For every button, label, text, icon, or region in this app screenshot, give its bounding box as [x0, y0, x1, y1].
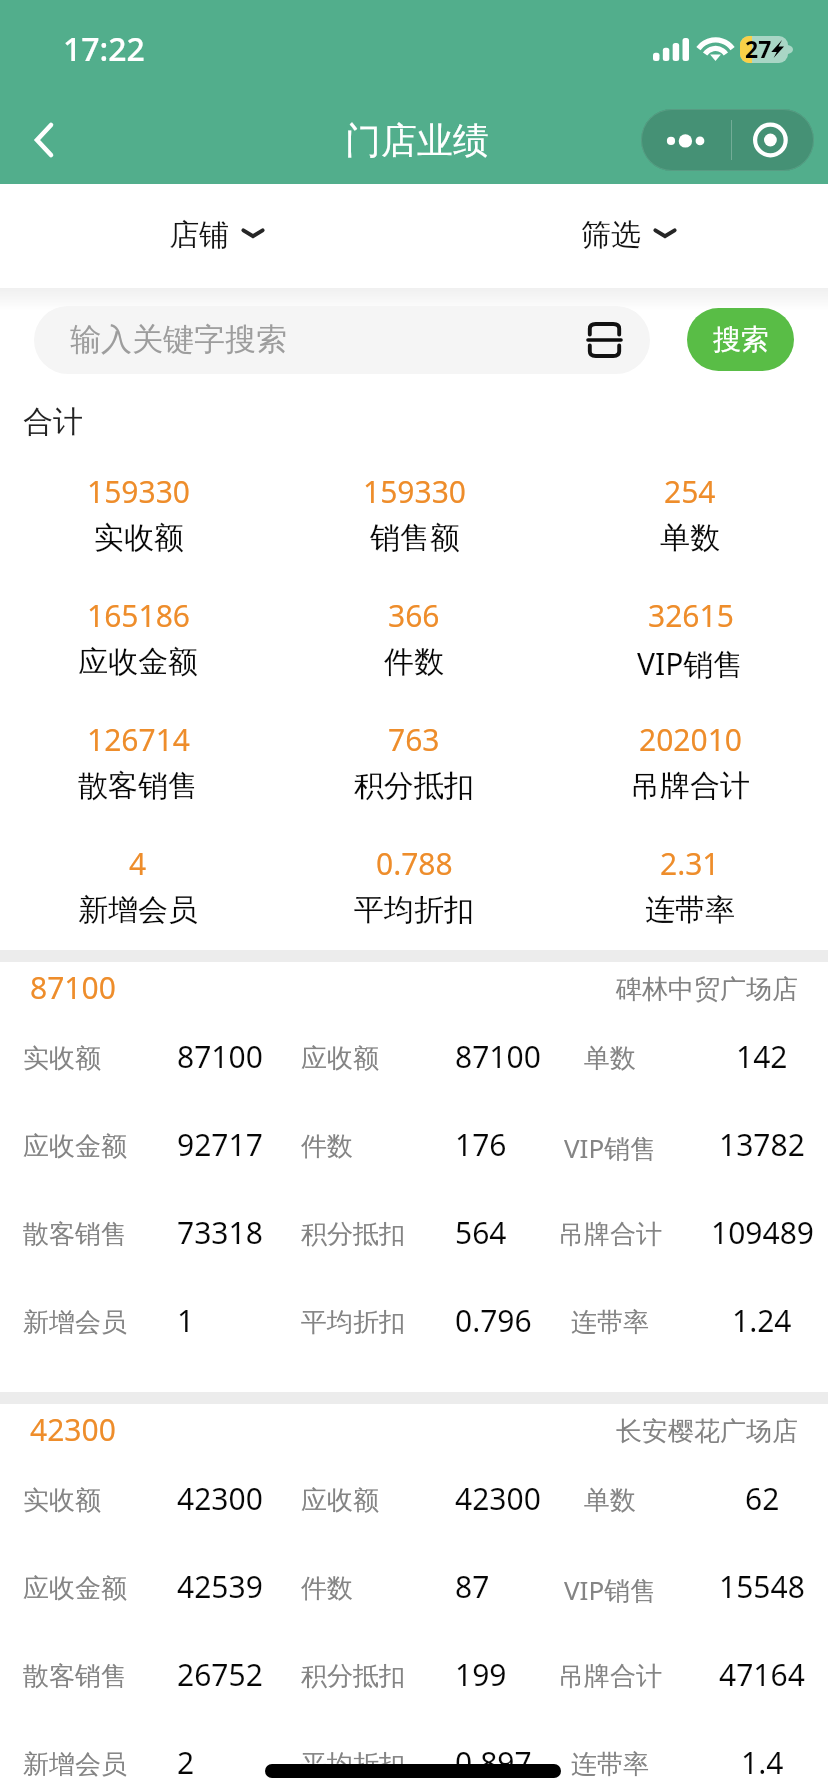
- staticText: 实收额: [23, 1042, 101, 1075]
- staticText: 店铺: [169, 216, 229, 254]
- staticText: 47164: [719, 1654, 805, 1695]
- staticText: 4: [129, 843, 147, 884]
- staticText: 202010: [639, 719, 742, 760]
- staticText: 254: [664, 471, 716, 512]
- staticText: 连带率: [571, 1748, 649, 1781]
- staticText: 新增会员: [23, 1306, 127, 1339]
- staticText: 176: [455, 1124, 507, 1165]
- staticText: 筛选: [581, 216, 641, 254]
- staticText: 平均折扣: [354, 891, 474, 929]
- staticText: VIP销售: [637, 643, 744, 684]
- staticText: 单数: [584, 1042, 636, 1075]
- staticText: 单数: [660, 519, 720, 557]
- staticText: 门店业绩: [345, 118, 489, 163]
- staticText: 92717: [177, 1124, 263, 1165]
- staticText: 199: [455, 1654, 507, 1695]
- staticText: 应收金额: [23, 1130, 127, 1163]
- staticText: 积分抵扣: [301, 1660, 405, 1693]
- staticText: 62: [745, 1478, 780, 1519]
- staticText: 应收金额: [78, 643, 198, 681]
- staticText: 销售额: [370, 519, 460, 557]
- staticText: 17:22: [63, 27, 145, 71]
- staticText: 件数: [301, 1572, 353, 1605]
- staticText: 159330: [363, 471, 466, 512]
- staticText: 吊牌合计: [558, 1660, 662, 1693]
- staticText: 87100: [30, 967, 116, 1008]
- staticText: 应收额: [301, 1042, 379, 1075]
- staticText: 0.796: [455, 1300, 532, 1341]
- staticText: 87100: [455, 1036, 541, 1077]
- button[interactable]: 42300: [0, 1404, 828, 1792]
- staticText: 42300: [177, 1478, 263, 1519]
- staticText: 26752: [177, 1654, 263, 1695]
- button[interactable]: 搜索: [687, 308, 794, 371]
- button[interactable]: More options: [641, 109, 814, 171]
- staticText: 2.31: [660, 843, 720, 884]
- staticText: 564: [455, 1212, 507, 1253]
- staticText: 应收额: [301, 1484, 379, 1517]
- staticText: 应收金额: [23, 1572, 127, 1605]
- staticText: 32615: [648, 595, 734, 636]
- staticText: 42300: [455, 1478, 541, 1519]
- staticText: 13782: [719, 1124, 805, 1165]
- staticText: 366: [388, 595, 440, 636]
- staticText: 实收额: [23, 1484, 101, 1517]
- staticText: 输入关键字搜索: [70, 320, 287, 359]
- staticText: 散客销售: [78, 767, 198, 805]
- staticText: 合计: [23, 403, 83, 441]
- staticText: 126714: [87, 719, 190, 760]
- staticText: 搜索: [713, 322, 769, 357]
- staticText: 159330: [87, 471, 190, 512]
- button[interactable]: 87100: [0, 962, 828, 1392]
- staticText: 87: [455, 1566, 490, 1607]
- staticText: 763: [388, 719, 440, 760]
- staticText: 0.788: [376, 843, 453, 884]
- staticText: 积分抵扣: [301, 1218, 405, 1251]
- staticText: 平均折扣: [301, 1748, 405, 1781]
- staticText: VIP销售: [564, 1130, 657, 1166]
- button[interactable]: Back: [14, 110, 74, 170]
- staticText: 142: [736, 1036, 788, 1077]
- staticText: 0.897: [455, 1742, 532, 1783]
- staticText: 27: [745, 36, 772, 60]
- staticText: 新增会员: [78, 891, 198, 929]
- staticText: 42300: [30, 1409, 116, 1450]
- staticText: 87100: [177, 1036, 263, 1077]
- staticText: 新增会员: [23, 1748, 127, 1781]
- staticText: 吊牌合计: [630, 767, 750, 805]
- staticText: 件数: [301, 1130, 353, 1163]
- staticText: 单数: [584, 1484, 636, 1517]
- button[interactable]: 筛选: [521, 190, 721, 278]
- staticText: 109489: [711, 1212, 814, 1253]
- staticText: 散客销售: [23, 1660, 127, 1693]
- staticText: 连带率: [571, 1306, 649, 1339]
- staticText: 平均折扣: [301, 1306, 405, 1339]
- staticText: 1.24: [732, 1300, 792, 1341]
- staticText: 实收额: [94, 519, 184, 557]
- button[interactable]: 店铺: [109, 190, 309, 278]
- staticText: 散客销售: [23, 1218, 127, 1251]
- staticText: 165186: [87, 595, 190, 636]
- staticText: 15548: [719, 1566, 805, 1607]
- staticText: VIP销售: [564, 1572, 657, 1608]
- staticText: 连带率: [645, 891, 735, 929]
- staticText: 碑林中贸广场店: [616, 973, 798, 1006]
- staticText: 1.4: [741, 1742, 784, 1783]
- button[interactable]: 输入关键字搜索: [34, 306, 650, 374]
- staticText: 长安樱花广场店: [616, 1415, 798, 1448]
- staticText: 吊牌合计: [558, 1218, 662, 1251]
- staticText: 73318: [177, 1212, 263, 1253]
- staticText: 2: [177, 1742, 195, 1783]
- staticText: 42539: [177, 1566, 263, 1607]
- staticText: 1: [177, 1300, 195, 1341]
- staticText: 积分抵扣: [354, 767, 474, 805]
- staticText: 件数: [384, 643, 444, 681]
